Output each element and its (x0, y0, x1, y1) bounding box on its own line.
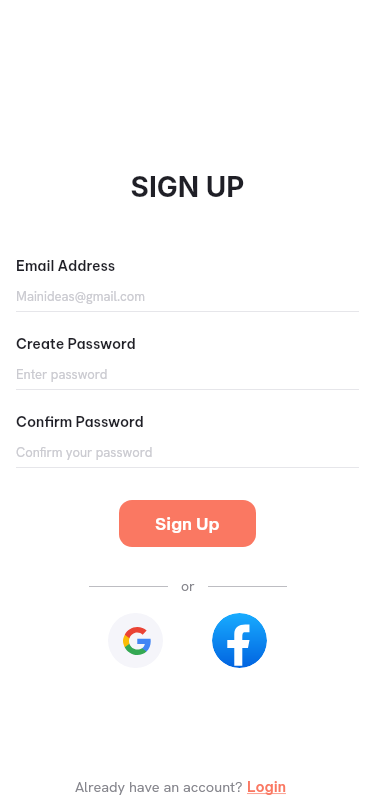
button[interactable]: Sign Up (119, 500, 256, 547)
button[interactable]: Sign up with Google (108, 613, 163, 668)
button[interactable]: Mainideas@gmail.com (16, 288, 359, 305)
button[interactable]: Login (247, 778, 286, 796)
staticText: Confirm Password (16, 413, 144, 431)
button[interactable]: Enter password (16, 366, 359, 383)
staticText: Already have an account? (75, 777, 247, 796)
staticText: or (181, 577, 195, 595)
button[interactable]: Sign up with Facebook (212, 613, 267, 668)
staticText: SIGN UP (0, 170, 375, 204)
staticText: Email Address (16, 257, 116, 275)
button[interactable]: Confirm your password (16, 444, 359, 461)
staticText: Sign Up (155, 513, 220, 535)
staticText: Create Password (16, 335, 136, 353)
